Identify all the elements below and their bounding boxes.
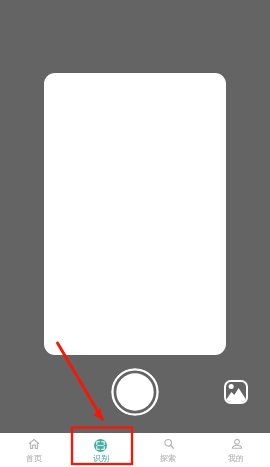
button[interactable]: Open gallery xyxy=(224,380,248,404)
staticText: 识别 xyxy=(93,453,109,463)
button[interactable]: Camera preview xyxy=(44,73,226,355)
button[interactable]: Capture photo xyxy=(111,368,159,416)
button[interactable]: 我的 xyxy=(202,433,270,467)
button[interactable]: 探索 xyxy=(134,433,202,467)
button[interactable]: 首页 xyxy=(0,433,67,467)
staticText: 首页 xyxy=(26,453,42,463)
staticText: 探索 xyxy=(160,453,176,463)
staticText: 我的 xyxy=(228,453,244,463)
button[interactable]: 识别 xyxy=(67,433,134,467)
